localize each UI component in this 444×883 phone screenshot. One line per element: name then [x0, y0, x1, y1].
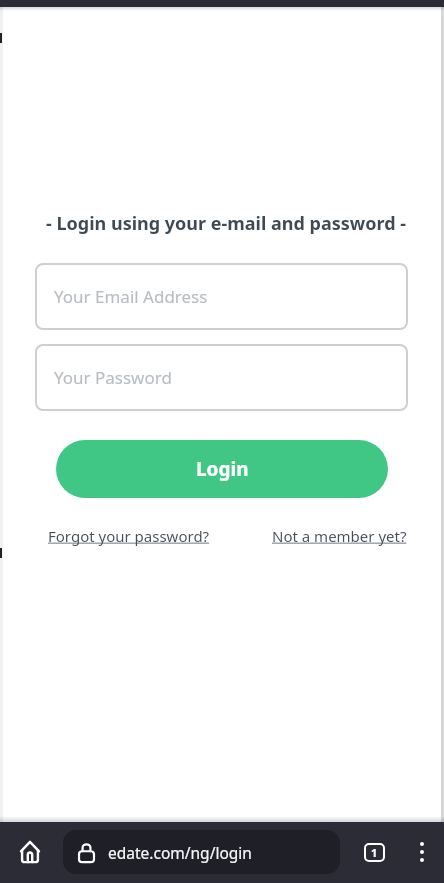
staticText: Login — [196, 456, 249, 482]
staticText: - Login using your e-mail and password - — [4, 211, 444, 236]
staticText: edate.com/ng/login — [108, 842, 252, 863]
button[interactable] — [12, 834, 48, 870]
button[interactable] — [406, 834, 438, 870]
staticText: Your Email Address — [54, 285, 208, 308]
button[interactable]: Forgot your password? — [48, 526, 210, 546]
staticText: 1 — [371, 845, 378, 860]
staticText: Forgot your password? — [48, 526, 210, 546]
button[interactable]: Not a member yet? — [272, 526, 407, 546]
button[interactable]: Your Email Address — [35, 263, 408, 330]
button[interactable]: 1 — [358, 836, 390, 868]
staticText: Not a member yet? — [272, 526, 407, 546]
button[interactable]: Your Password — [35, 344, 408, 411]
button[interactable]: edate.com/ng/login — [63, 830, 340, 874]
staticText: Your Password — [54, 366, 172, 389]
button[interactable]: Login — [56, 440, 388, 498]
